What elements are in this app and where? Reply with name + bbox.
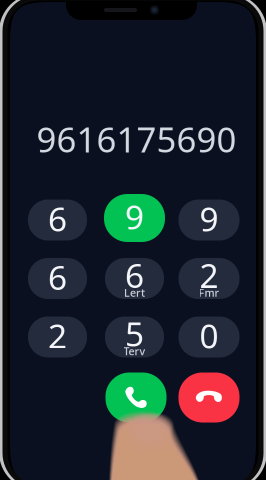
staticText: 6 (48, 255, 67, 299)
staticText: 6 (125, 253, 144, 297)
staticText: 5 (125, 311, 144, 356)
staticText: 6 (48, 196, 67, 241)
button[interactable]: 5 (105, 316, 164, 357)
button[interactable]: 0 (178, 316, 239, 357)
button[interactable]: Call (105, 372, 166, 422)
staticText: 2 (48, 313, 67, 358)
button[interactable]: 6 (28, 258, 87, 299)
staticText: 0 (199, 313, 218, 358)
staticText: 2 (199, 253, 218, 297)
button[interactable]: 6 (105, 258, 164, 299)
staticText: 9616175690 (36, 116, 236, 162)
button[interactable]: 9 (104, 194, 165, 242)
staticText: 9 (199, 196, 218, 241)
button[interactable]: 2 (28, 316, 87, 357)
button[interactable]: End call (178, 372, 239, 422)
button[interactable]: 9 (178, 199, 239, 240)
button[interactable]: 6 (28, 199, 87, 240)
staticText: 9 (125, 194, 144, 239)
button[interactable]: 2 (178, 258, 239, 299)
staticText: Terv (123, 344, 145, 358)
staticText: Lert (124, 285, 145, 300)
staticText: Fmr (198, 285, 219, 300)
